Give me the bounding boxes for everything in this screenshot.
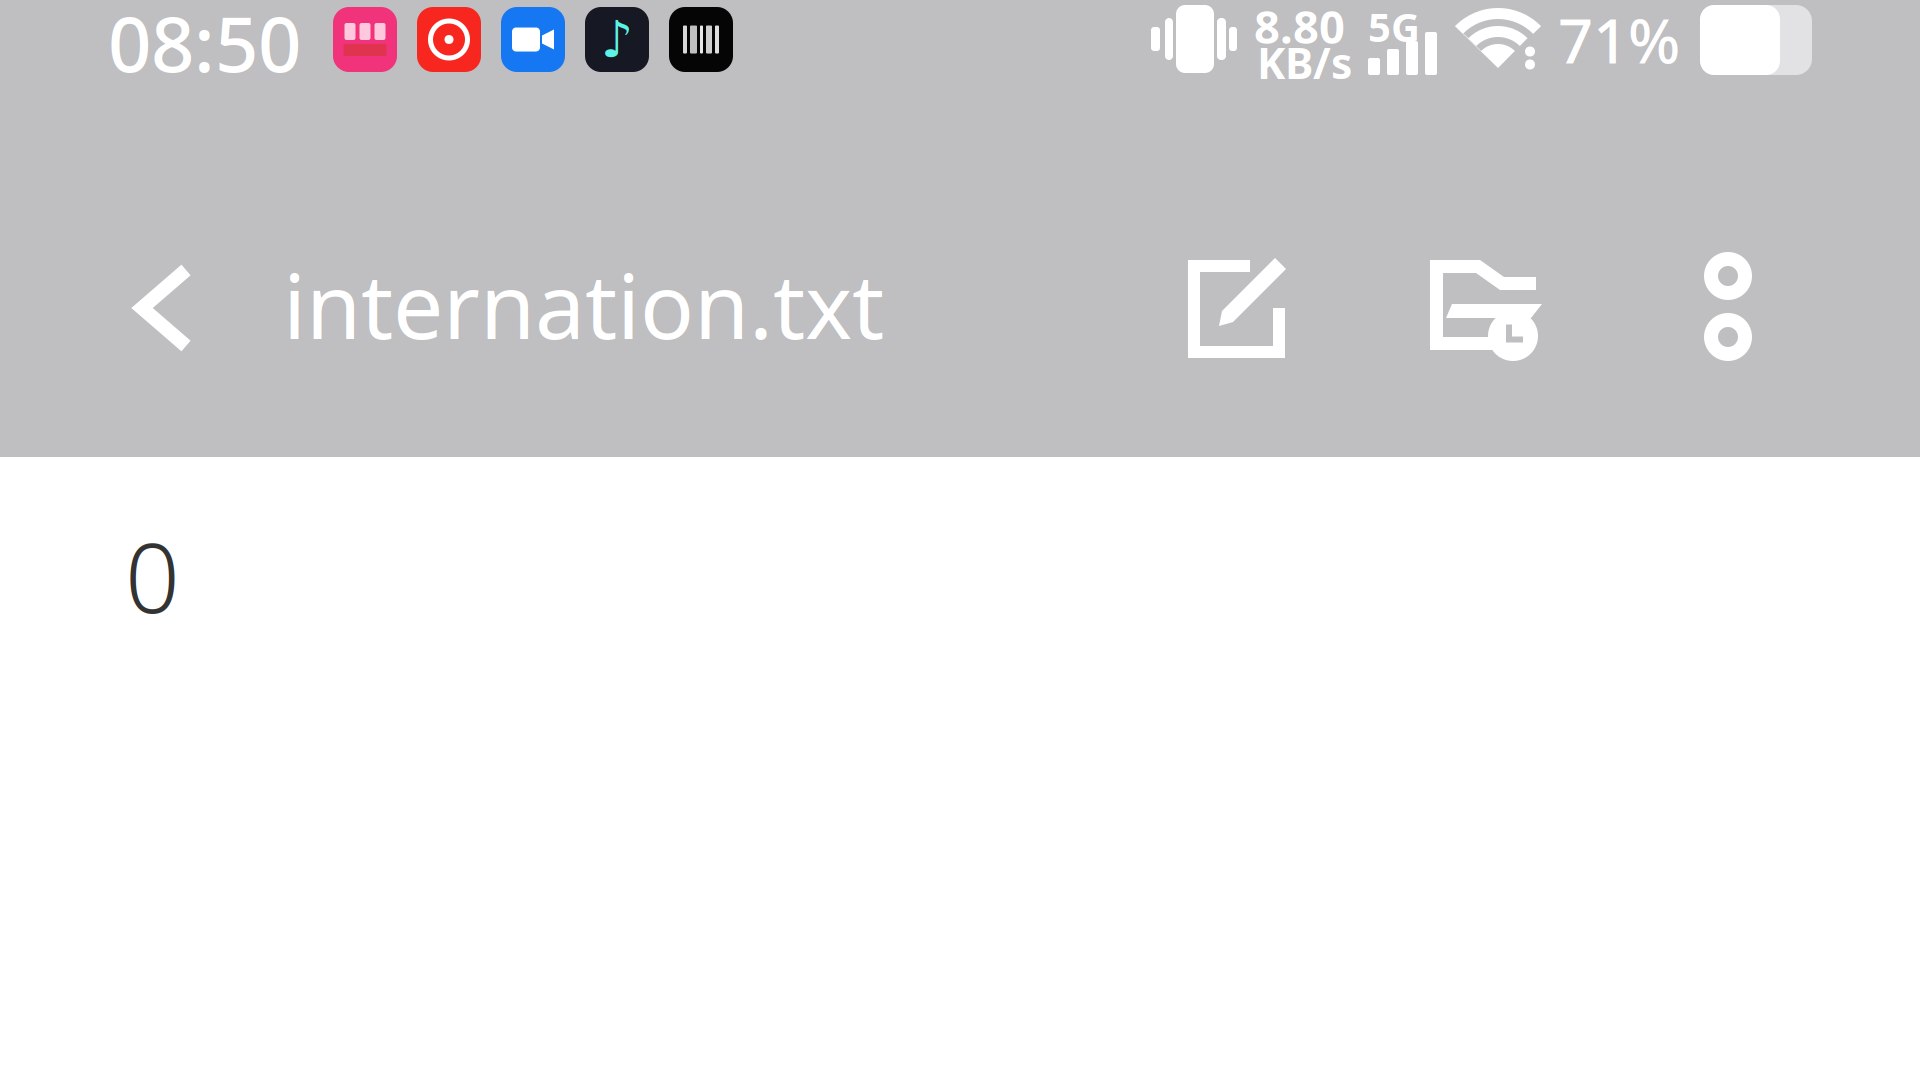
button[interactable]: Recent files [1404,238,1568,385]
staticText: 5G [1368,0,1420,53]
staticText: internation.txt [283,245,884,364]
staticText: ♪ [601,11,633,68]
button[interactable]: Edit [1162,238,1315,380]
button[interactable]: Document text [0,457,1920,1080]
button[interactable]: More options [1658,232,1798,381]
staticText: KB/s [1257,34,1352,91]
staticText: 8.80 [1254,0,1345,56]
button[interactable]: Back [120,250,210,366]
staticText: 08:50 [108,0,301,93]
staticText: 71% [1558,0,1680,80]
staticText: 0 [125,512,180,639]
